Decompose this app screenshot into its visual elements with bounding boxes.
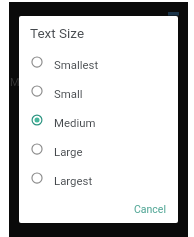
staticText: M xyxy=(10,76,20,89)
button[interactable]: Cancel xyxy=(128,199,172,219)
staticText: Large xyxy=(54,145,83,158)
button[interactable]: Smallest xyxy=(19,50,178,79)
button[interactable]: Medium xyxy=(19,108,178,137)
staticText: Text Size xyxy=(30,25,85,41)
button[interactable]: Small xyxy=(19,79,178,108)
staticText: Medium xyxy=(54,116,96,129)
staticText: Cancel xyxy=(134,203,166,215)
staticText: Smallest xyxy=(54,58,99,71)
staticText: Largest xyxy=(54,174,93,187)
button[interactable]: Large xyxy=(19,137,178,166)
button[interactable]: Largest xyxy=(19,166,178,195)
staticText: Small xyxy=(54,87,83,100)
